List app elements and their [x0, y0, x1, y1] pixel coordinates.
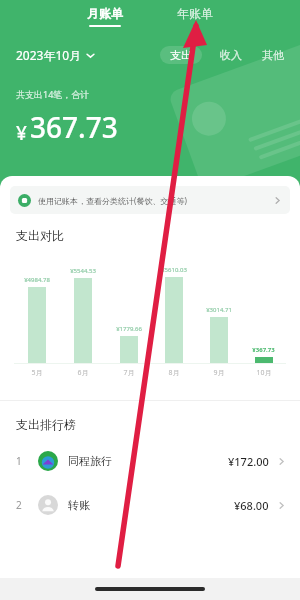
- staticText: 转账: [68, 498, 90, 512]
- staticText: ¥1779.66: [116, 325, 142, 333]
- button[interactable]: 1: [0, 446, 300, 476]
- staticText: 6月: [77, 368, 89, 378]
- button[interactable]: 其他: [260, 46, 286, 64]
- other: Details: [277, 457, 286, 466]
- staticText: 367.73: [30, 108, 118, 146]
- button[interactable]: 2023年10月: [16, 47, 95, 63]
- staticText: 共支出14笔，合计: [16, 88, 90, 100]
- staticText: 支出排行榜: [16, 417, 76, 432]
- staticText: 2023年10月: [16, 47, 82, 63]
- staticText: 2: [16, 498, 22, 512]
- staticText: ¥5610.03: [161, 266, 187, 274]
- staticText: 年账单: [177, 6, 213, 21]
- staticText: 8月: [168, 368, 180, 378]
- staticText: ¥4984.78: [24, 276, 50, 284]
- button[interactable]: 收入: [218, 46, 244, 64]
- other: Details: [277, 501, 286, 510]
- staticText: 1: [16, 454, 22, 468]
- button[interactable]: 2: [0, 490, 300, 520]
- staticText: ¥3014.71: [206, 306, 232, 314]
- staticText: ¥367.73: [252, 346, 275, 354]
- button[interactable]: 月账单: [77, 6, 133, 27]
- staticText: 使用记账本，查看分类统计(餐饮、交通等): [38, 195, 187, 206]
- staticText: 收入: [220, 48, 242, 62]
- button[interactable]: 使用记账本，查看分类统计(餐饮、交通等): [10, 186, 290, 214]
- staticText: ¥: [16, 120, 27, 146]
- staticText: 月账单: [87, 6, 123, 21]
- staticText: 10月: [256, 368, 272, 378]
- staticText: 支出: [170, 48, 192, 62]
- staticText: 其他: [262, 48, 284, 62]
- staticText: ¥68.00: [234, 498, 269, 513]
- button[interactable]: 支出: [160, 46, 202, 64]
- staticText: ¥172.00: [228, 454, 269, 469]
- staticText: 同程旅行: [68, 454, 112, 468]
- staticText: 7月: [123, 368, 135, 378]
- staticText: 5月: [31, 368, 43, 378]
- staticText: ¥5544.53: [70, 267, 96, 275]
- staticText: 支出对比: [16, 228, 64, 243]
- button[interactable]: 年账单: [167, 6, 223, 27]
- staticText: 9月: [213, 368, 225, 378]
